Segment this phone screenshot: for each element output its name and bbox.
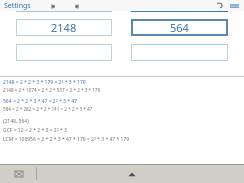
staticText: LCM = 100956 = 2 * 2 * 3 * 47 * 179 = 22… (3, 136, 130, 143)
button[interactable]: Keyboard input method (12, 167, 26, 181)
staticText: 564 (170, 20, 189, 35)
button[interactable]: Menu (227, 0, 241, 11)
staticText: 2148 = 2 * 1074 = 2 * 2 * 537 = 2 * 2 * … (3, 87, 101, 93)
button[interactable]: Undo (213, 0, 225, 11)
button[interactable]: Next (71, 1, 81, 11)
button[interactable]: Expand (124, 166, 140, 182)
staticText: 2148 (51, 20, 77, 35)
button[interactable] (16, 44, 112, 61)
button[interactable]: Previous (48, 1, 58, 11)
staticText: 2148 = 2 * 2 * 3 * 179 = 22 * 3 * 179 (3, 79, 86, 86)
staticText: GCF = 12 = 2 * 2 * 3 = 22 * 3 (3, 127, 67, 134)
button[interactable] (131, 44, 228, 61)
staticText: (2148, 564) (3, 118, 29, 125)
staticText: 564 = 2 * 2 * 3 * 47 = 22 * 3 * 47 (3, 98, 78, 105)
button[interactable]: Settings (4, 1, 31, 11)
staticText: Settings (4, 1, 31, 11)
button[interactable]: 564 (131, 19, 228, 36)
staticText: 564 = 2 * 282 = 2 * 2 * 141 = 2 * 2 * 3 … (3, 106, 93, 112)
button[interactable]: 2148 (16, 19, 112, 36)
